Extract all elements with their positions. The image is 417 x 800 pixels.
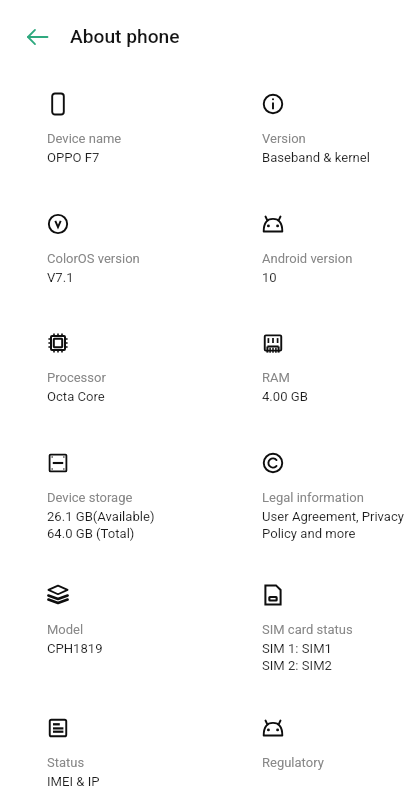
staticText: IMEI & IP bbox=[47, 774, 100, 789]
staticText: Baseband & kernel bbox=[262, 150, 370, 165]
button[interactable]: Android version bbox=[238, 202, 416, 297]
staticText: Status bbox=[47, 755, 85, 770]
button[interactable]: Regulatory bbox=[238, 706, 416, 786]
staticText: Processor bbox=[47, 370, 106, 385]
button[interactable]: Version bbox=[238, 82, 416, 177]
button[interactable]: Legal information bbox=[238, 441, 416, 553]
staticText: User Agreement, Privacy bbox=[262, 509, 405, 524]
button[interactable]: SIM card status bbox=[238, 573, 416, 685]
button[interactable]: RAM bbox=[238, 321, 416, 416]
staticText: V7.1 bbox=[47, 270, 74, 285]
staticText: About phone bbox=[70, 25, 180, 48]
staticText: SIM 1: SIM1 bbox=[262, 641, 332, 656]
button[interactable]: Model bbox=[23, 573, 238, 668]
staticText: ColorOS version bbox=[47, 251, 140, 266]
button[interactable]: ColorOS version bbox=[23, 202, 238, 297]
staticText: Legal information bbox=[262, 490, 364, 505]
staticText: CPH1819 bbox=[47, 641, 103, 656]
staticText: 26.1 GB(Available) bbox=[47, 509, 155, 524]
staticText: Policy and more bbox=[262, 526, 356, 541]
button[interactable]: Status bbox=[23, 706, 238, 800]
staticText: Android version bbox=[262, 251, 353, 266]
staticText: Device storage bbox=[47, 490, 133, 505]
staticText: OPPO F7 bbox=[47, 150, 100, 165]
button[interactable]: Device name bbox=[23, 82, 238, 177]
staticText: Model bbox=[47, 622, 84, 637]
staticText: Regulatory bbox=[262, 755, 324, 770]
staticText: RAM bbox=[262, 370, 290, 385]
button[interactable]: Device storage bbox=[23, 441, 238, 553]
staticText: Version bbox=[262, 131, 306, 146]
button[interactable]: Processor bbox=[23, 321, 238, 416]
staticText: 4.00 GB bbox=[262, 389, 308, 404]
staticText: 10 bbox=[262, 270, 277, 285]
staticText: 64.0 GB (Total) bbox=[47, 526, 135, 541]
staticText: Device name bbox=[47, 131, 122, 146]
staticText: SIM 2: SIM2 bbox=[262, 658, 332, 673]
staticText: SIM card status bbox=[262, 622, 353, 637]
staticText: Octa Core bbox=[47, 389, 105, 404]
button[interactable]: Back bbox=[23, 22, 52, 51]
